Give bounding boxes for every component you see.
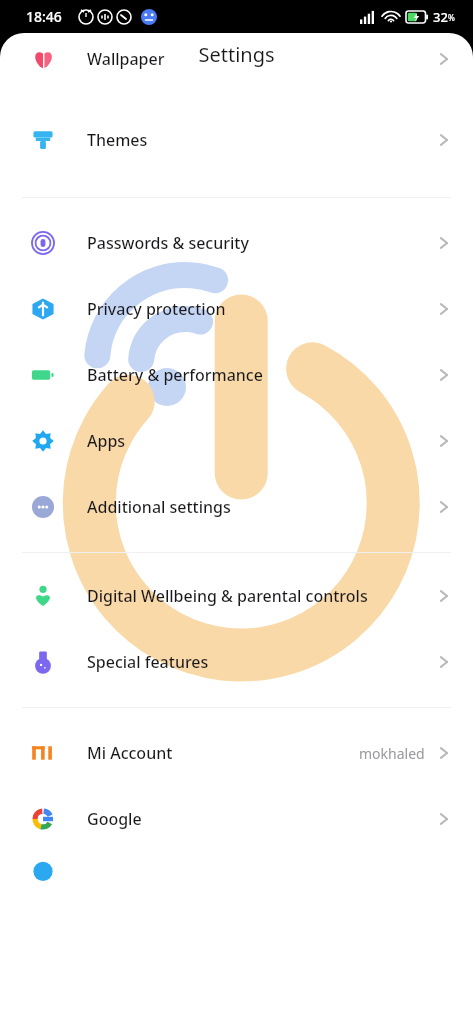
button[interactable]: Wallpaper <box>0 41 473 76</box>
staticText: Special features <box>87 651 429 673</box>
button[interactable] <box>0 852 473 886</box>
staticText: mokhaled <box>359 744 425 763</box>
staticText: Additional settings <box>87 496 429 518</box>
staticText: Settings <box>198 41 275 68</box>
button[interactable]: Mi Account <box>0 720 473 786</box>
button[interactable]: Digital Wellbeing & parental controls <box>0 563 473 629</box>
button[interactable]: Apps <box>0 408 473 474</box>
button[interactable]: Google <box>0 786 473 852</box>
button[interactable]: Privacy protection <box>0 276 473 342</box>
staticText: 18:46 <box>26 7 62 26</box>
button[interactable]: Themes <box>0 107 473 173</box>
staticText: Wallpaper <box>87 48 429 70</box>
button[interactable]: Special features <box>0 629 473 695</box>
staticText: Themes <box>87 129 429 151</box>
button[interactable]: Additional settings <box>0 474 473 540</box>
staticText: % <box>448 12 455 23</box>
staticText: Battery & performance <box>87 364 429 386</box>
staticText: Apps <box>87 430 429 452</box>
button[interactable]: Passwords & security <box>0 210 473 276</box>
staticText: Digital Wellbeing & parental controls <box>87 585 429 607</box>
staticText: Google <box>87 808 429 830</box>
staticText: Privacy protection <box>87 298 429 320</box>
staticText: 32 <box>433 8 448 26</box>
button[interactable]: Battery & performance <box>0 342 473 408</box>
staticText: Passwords & security <box>87 232 429 254</box>
staticText: Mi Account <box>87 742 351 764</box>
